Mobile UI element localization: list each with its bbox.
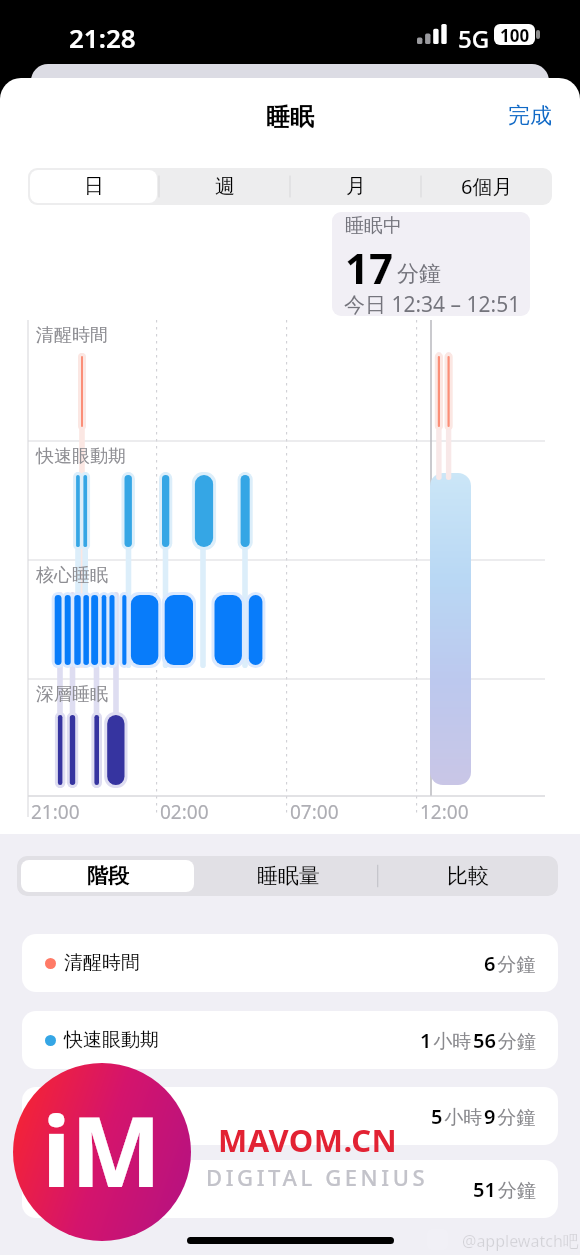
staticText: @applewatch吧 bbox=[462, 1230, 579, 1252]
staticText: 02:00 bbox=[160, 799, 209, 825]
staticText: 清醒時間 bbox=[64, 951, 140, 975]
staticText: 6 分鐘 bbox=[484, 950, 536, 977]
button[interactable]: 週 bbox=[159, 168, 290, 205]
staticText: iM bbox=[42, 1084, 162, 1215]
staticText: 6個月 bbox=[461, 173, 513, 200]
staticText: 21:28 bbox=[69, 20, 136, 55]
staticText: 5G bbox=[458, 22, 490, 55]
staticText: 17 bbox=[345, 239, 394, 296]
staticText: 12:00 bbox=[420, 799, 469, 825]
staticText: 1 小時 56 分鐘 bbox=[420, 1027, 536, 1054]
staticText: MAVOM.CN bbox=[218, 1119, 398, 1161]
staticText: DIGITAL GENIUS bbox=[206, 1162, 429, 1192]
staticText: 核心睡眠 bbox=[36, 564, 108, 587]
button[interactable]: 快速眼動期 bbox=[22, 1011, 558, 1069]
button[interactable]: 比較 bbox=[378, 856, 558, 896]
staticText: 比較 bbox=[447, 863, 489, 889]
staticText: 睡眠量 bbox=[257, 863, 320, 889]
staticText: 週 bbox=[215, 174, 235, 199]
button[interactable]: 階段 bbox=[17, 856, 198, 896]
staticText: 核心睡眠 bbox=[64, 1104, 140, 1128]
staticText: 今日 12:34 – 12:51 bbox=[344, 290, 521, 316]
staticText: 100 bbox=[500, 24, 530, 45]
staticText: 21:00 bbox=[31, 799, 80, 825]
staticText: 睡眠 bbox=[0, 102, 580, 132]
button[interactable]: 日 bbox=[28, 168, 159, 205]
staticText: 深層睡眠 bbox=[36, 683, 108, 706]
button[interactable]: 完成 bbox=[491, 93, 569, 139]
staticText: 日 bbox=[84, 174, 104, 199]
staticText: 清醒時間 bbox=[36, 324, 108, 347]
button[interactable]: 6個月 bbox=[421, 168, 552, 205]
button[interactable]: 核心睡眠 bbox=[22, 1087, 558, 1145]
button[interactable]: 清醒時間 bbox=[22, 934, 558, 992]
staticText: 快速眼動期 bbox=[64, 1028, 159, 1052]
staticText: 階段 bbox=[87, 863, 129, 889]
staticText: 快速眼動期 bbox=[36, 445, 126, 468]
staticText: 深層睡眠 bbox=[64, 1177, 140, 1201]
staticText: 分鐘 bbox=[397, 260, 441, 288]
staticText: 51 分鐘 bbox=[473, 1176, 536, 1203]
button[interactable]: 睡眠量 bbox=[198, 856, 378, 896]
staticText: 完成 bbox=[508, 102, 552, 130]
button[interactable]: 深層睡眠 bbox=[22, 1160, 558, 1218]
staticText: 07:00 bbox=[290, 799, 339, 825]
staticText: 月 bbox=[346, 174, 366, 199]
staticText: 5 小時 9 分鐘 bbox=[431, 1103, 536, 1130]
button[interactable]: 月 bbox=[290, 168, 421, 205]
staticText: 睡眠中 bbox=[345, 214, 402, 238]
